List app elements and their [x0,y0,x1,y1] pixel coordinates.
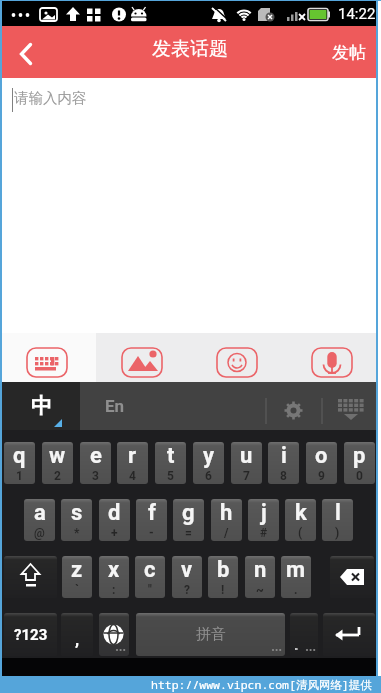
button[interactable]: 。 [290,613,318,656]
staticText: u [240,443,253,469]
button[interactable]: p [344,442,375,484]
button[interactable]: v [172,556,202,598]
button[interactable]: j [248,499,279,541]
staticText: z [71,557,83,583]
staticText: a [34,500,46,526]
button[interactable]: , [61,613,93,656]
staticText: f [148,500,156,526]
button[interactable] [190,333,284,382]
button[interactable]: e [80,442,111,484]
staticText: p [353,443,366,469]
staticText: http://www.vipcn.com[清风网络]提供 [151,677,372,693]
button[interactable]: y [193,442,224,484]
button[interactable]: l [322,499,353,541]
staticText: y [203,443,215,469]
staticText: # [260,526,268,540]
staticText: 14:22 [338,5,376,23]
staticText: j [261,500,267,526]
button[interactable]: i [268,442,299,484]
button[interactable]: 请输入内容 [2,78,377,333]
button[interactable]: q [4,442,35,484]
button[interactable]: a [24,499,55,541]
button[interactable]: 中 [2,382,80,430]
staticText: m [286,557,306,583]
button[interactable] [99,613,129,656]
button[interactable]: n [245,556,275,598]
staticText: d [108,500,121,526]
button[interactable]: w [42,442,73,484]
staticText: = [185,526,192,540]
button[interactable] [2,26,50,78]
staticText: , [75,629,80,649]
staticText: 拼音 [196,625,226,644]
staticText: 0 [356,469,363,483]
button[interactable] [2,333,96,382]
staticText: . [294,583,298,597]
staticText: g [182,500,195,526]
button[interactable]: ?123 [4,613,57,656]
staticText: n [254,557,267,583]
staticText: 2 [54,469,61,483]
staticText: i [281,443,287,469]
staticText: ~ [256,583,264,597]
staticText: 7 [243,469,250,483]
button[interactable]: d [99,499,130,541]
staticText: 8 [280,469,287,483]
button[interactable] [284,333,377,382]
button[interactable]: c [135,556,165,598]
staticText: 9 [318,469,325,483]
button[interactable]: s [61,499,92,541]
button[interactable]: g [173,499,204,541]
staticText: ) [335,526,340,540]
button[interactable] [330,556,374,598]
button[interactable]: En [80,382,150,430]
button[interactable] [268,382,322,430]
staticText: / [224,526,229,540]
staticText: h [220,500,233,526]
button[interactable]: 拼音 [136,613,285,656]
button[interactable]: k [285,499,316,541]
staticText: e [90,443,102,469]
staticText: k [295,500,307,526]
staticText: c [144,557,156,583]
staticText: q [13,443,26,469]
button[interactable]: x [99,556,129,598]
button[interactable]: r [117,442,148,484]
button[interactable]: z [62,556,92,598]
staticText: " [148,583,152,597]
staticText: w [49,443,66,469]
staticText: o [315,443,328,469]
staticText: 6 [205,469,212,483]
staticText: ( [298,526,303,540]
button[interactable] [96,333,190,382]
button[interactable]: b [208,556,238,598]
button[interactable]: o [306,442,337,484]
button[interactable] [4,556,57,598]
staticText: ! [221,583,225,597]
staticText: l [335,500,341,526]
button[interactable] [323,613,375,656]
button[interactable]: u [231,442,262,484]
staticText: ? [184,583,190,597]
button[interactable]: t [155,442,186,484]
staticText: x [108,557,120,583]
button[interactable] [324,382,377,430]
staticText: + [111,526,118,540]
staticText: ?123 [14,626,48,644]
staticText: @ [34,526,45,540]
staticText: 。 [294,639,304,652]
staticText: * [74,526,80,540]
staticText: 4 [129,469,136,483]
staticText: En [105,396,125,416]
button[interactable]: h [211,499,242,541]
staticText: t [167,443,175,469]
staticText: 发表话题 [152,37,228,61]
staticText: 请输入内容 [14,89,87,107]
button[interactable]: 发帖 [321,26,377,78]
staticText: 发帖 [332,42,366,63]
staticText: b [217,557,230,583]
button[interactable]: m [281,556,311,598]
staticText: 5 [167,469,174,483]
button[interactable]: f [136,499,167,541]
staticText: r [128,443,137,469]
